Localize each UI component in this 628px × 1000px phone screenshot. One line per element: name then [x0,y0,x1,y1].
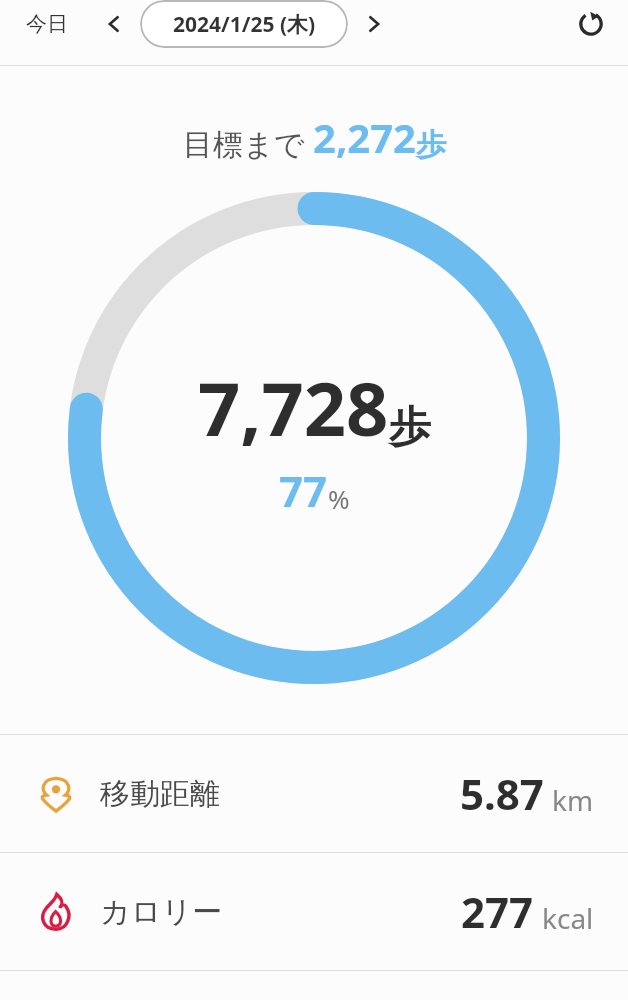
button[interactable]: 2024/1/25 (木) [140,0,348,48]
button[interactable]: Next day [354,4,394,44]
staticText: 歩 [389,401,431,454]
staticText: 歩 [416,126,446,164]
staticText: 移動距離 [100,775,220,813]
button[interactable]: 移動距離 [0,735,628,852]
staticText: 今日 [26,11,68,37]
staticText: カロリー [100,893,223,931]
staticText: 77 [279,462,328,519]
staticText: 277 [461,883,534,940]
staticText: 7,728 [198,357,389,458]
button[interactable]: Refresh [568,1,614,47]
staticText: % [328,481,350,516]
button[interactable]: 今日 [14,3,80,45]
button[interactable]: カロリー [0,853,628,970]
staticText: kcal [542,899,594,937]
staticText: km [552,781,594,819]
staticText: 2,272 [313,110,416,164]
staticText: 目標まで [183,126,305,164]
staticText: 2024/1/25 (木) [173,10,316,39]
button[interactable]: Previous day [94,4,134,44]
staticText: 5.87 [460,765,544,822]
